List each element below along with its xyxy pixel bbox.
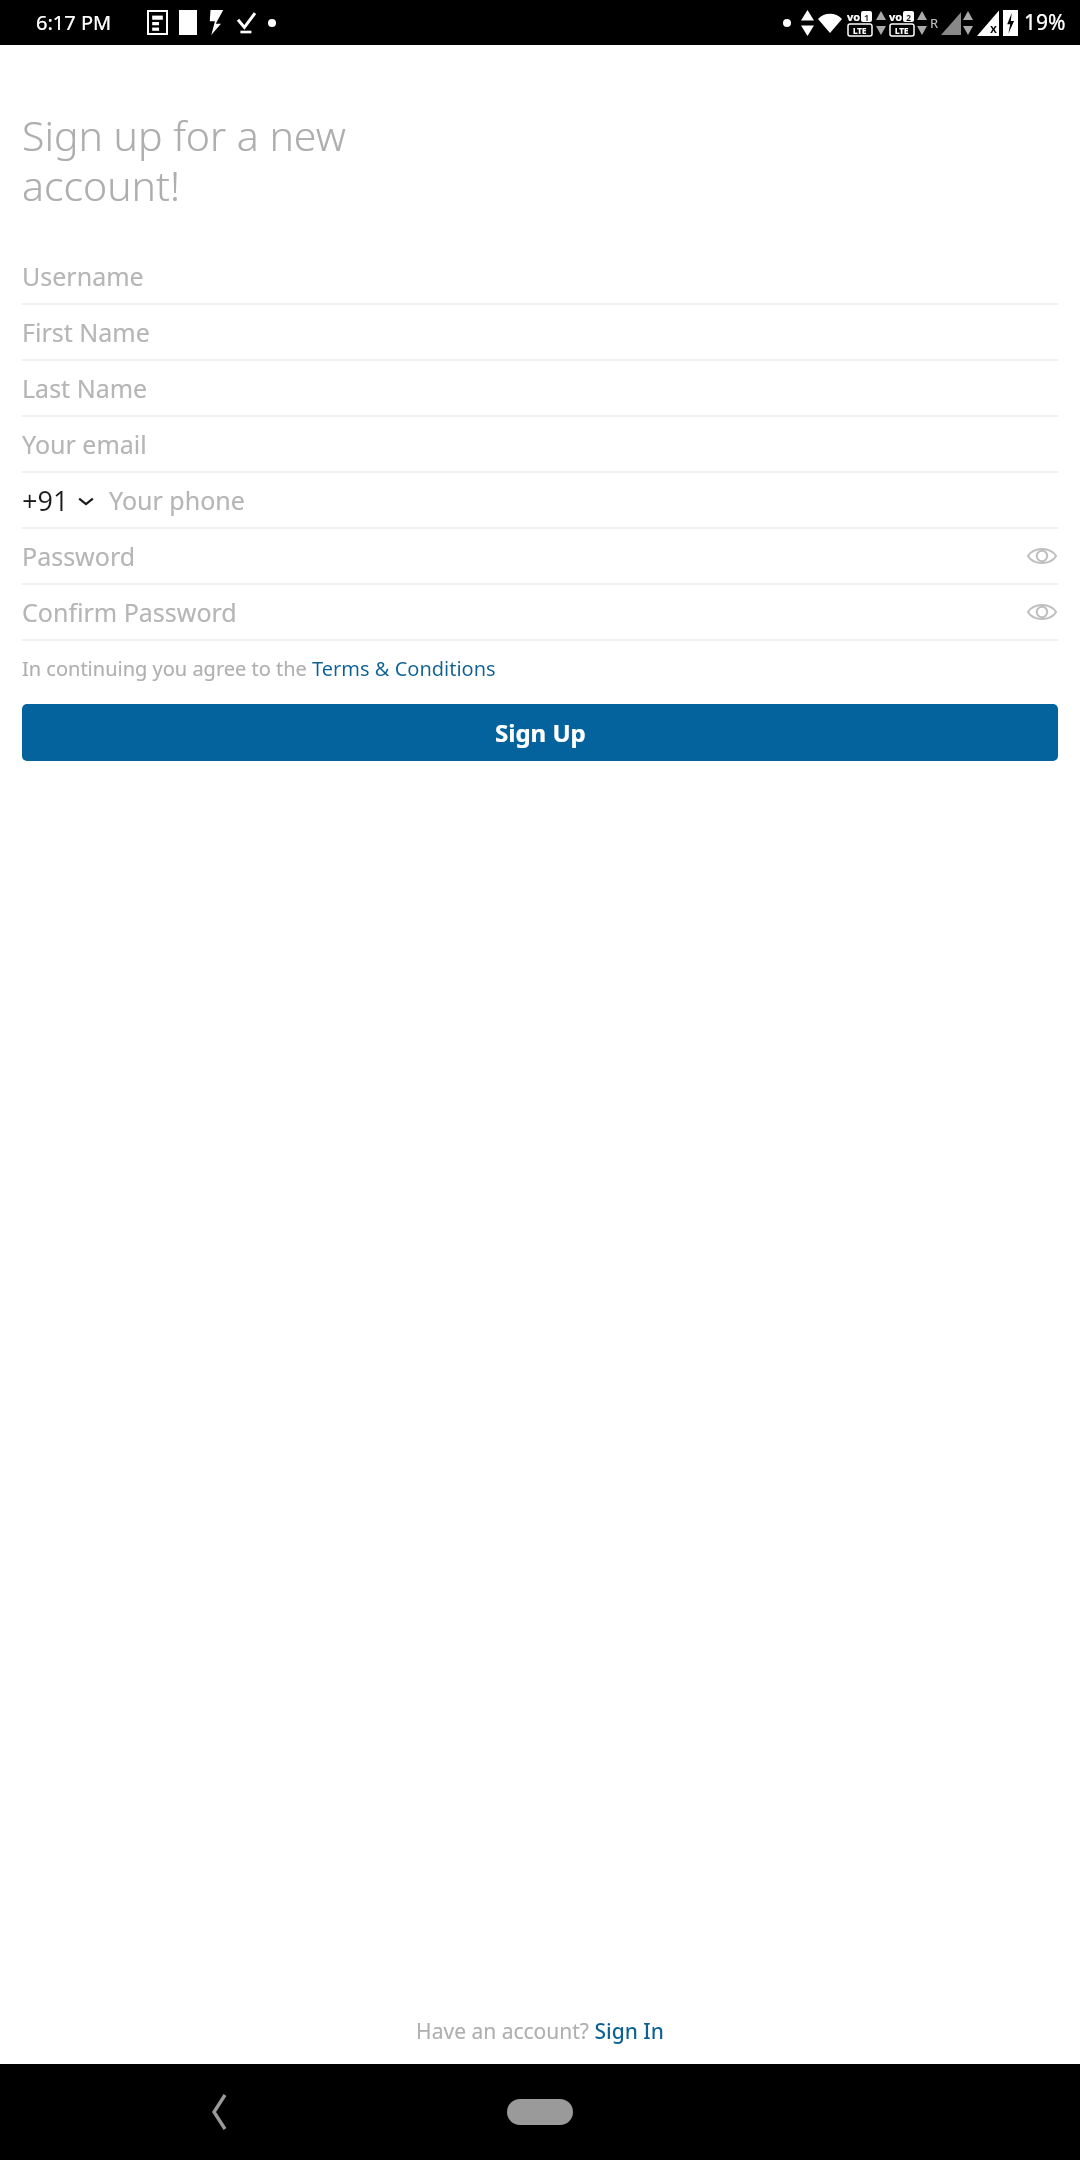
button[interactable]: +91 [22, 482, 95, 519]
staticText: 19% [1024, 8, 1066, 37]
staticText: 6:17 PM [36, 9, 112, 36]
button[interactable]: Have an account? Sign In [0, 2017, 1080, 2056]
button[interactable]: Home [485, 2087, 595, 2137]
staticText: LTE [895, 25, 909, 36]
staticText: vo [847, 9, 861, 24]
button[interactable]: Sign Up [22, 704, 1058, 761]
button[interactable]: Your phone [109, 483, 1080, 517]
staticText: x [990, 20, 997, 36]
staticText: 2 [906, 11, 912, 22]
button[interactable]: Back [190, 2082, 250, 2142]
staticText: Have an account? Sign In [416, 2017, 664, 2046]
staticText: Sign Up [495, 716, 586, 749]
button[interactable]: Password [0, 529, 1080, 583]
button[interactable]: Show password [1022, 536, 1062, 576]
staticText: Password [22, 539, 136, 573]
button[interactable]: Show password [1022, 592, 1062, 632]
button[interactable]: Your email [0, 417, 1080, 471]
button[interactable]: First Name [0, 305, 1080, 359]
staticText: In continuing you agree to the Terms & C… [22, 655, 496, 682]
staticText: Sign up for a new account! [22, 107, 346, 213]
button[interactable]: Last Name [0, 361, 1080, 415]
button[interactable]: Confirm Password [0, 585, 1080, 639]
staticText: Last Name [22, 371, 148, 405]
button[interactable]: Username [0, 249, 1080, 303]
staticText: +91 [22, 482, 69, 519]
button[interactable]: In continuing you agree to the Terms & C… [22, 655, 1058, 682]
staticText: Confirm Password [22, 595, 237, 629]
staticText: First Name [22, 315, 150, 349]
staticText: 1 [864, 11, 870, 22]
staticText: Your phone [109, 483, 245, 517]
staticText: vo [889, 9, 903, 24]
staticText: Your email [22, 427, 147, 461]
staticText: Username [22, 259, 144, 293]
staticText: R [930, 14, 939, 32]
staticText: LTE [853, 25, 867, 36]
